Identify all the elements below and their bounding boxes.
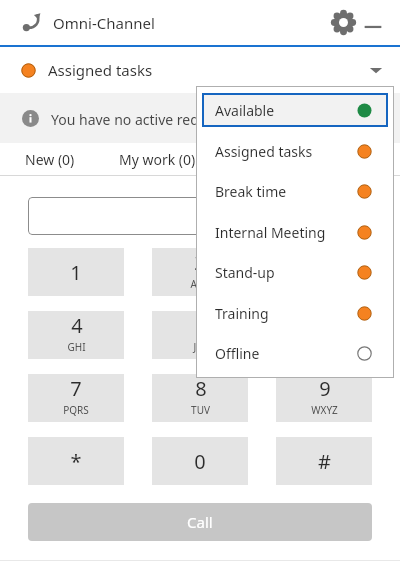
- staticText: 9: [319, 375, 331, 402]
- button[interactable]: [28, 197, 372, 235]
- button[interactable]: Stand-up: [196, 255, 394, 289]
- staticText: 1: [70, 259, 82, 286]
- staticText: Omni-Channel: [53, 13, 155, 33]
- staticText: PQRS: [63, 403, 89, 417]
- button[interactable]: *: [28, 437, 124, 485]
- button[interactable]: #: [276, 437, 372, 485]
- staticText: My work (0): [119, 150, 196, 169]
- staticText: Training: [215, 304, 269, 323]
- button[interactable]: 1: [28, 248, 124, 296]
- staticText: Call: [187, 512, 213, 532]
- staticText: New (0): [25, 150, 75, 169]
- button[interactable]: New (0): [0, 143, 100, 176]
- button[interactable]: Settings: [331, 10, 356, 35]
- staticText: #: [318, 448, 331, 475]
- button[interactable]: My work (0): [100, 143, 215, 176]
- button[interactable]: 4: [28, 311, 124, 359]
- button[interactable]: Omni-Channel: [18, 8, 46, 36]
- button[interactable]: 0: [152, 437, 248, 485]
- button[interactable]: 5: [152, 311, 248, 359]
- staticText: GHI: [67, 340, 86, 354]
- button[interactable]: Call: [28, 503, 372, 541]
- button[interactable]: Internal Meeting: [196, 215, 394, 249]
- staticText: Offline: [215, 344, 260, 363]
- staticText: *: [70, 448, 82, 475]
- button[interactable]: 9: [276, 374, 372, 422]
- button[interactable]: 8: [152, 374, 248, 422]
- staticText: WXYZ: [311, 403, 338, 417]
- staticText: Assigned tasks: [48, 60, 153, 80]
- staticText: 4: [71, 312, 83, 339]
- staticText: TUV: [191, 403, 210, 417]
- staticText: You have no active requests: [51, 110, 234, 129]
- staticText: ABC: [190, 277, 210, 291]
- staticText: Stand-up: [215, 263, 275, 282]
- button[interactable]: Training: [196, 296, 394, 330]
- staticText: 7: [70, 375, 82, 402]
- button[interactable]: Minimize: [362, 12, 384, 34]
- button[interactable]: Assigned tasks: [196, 134, 394, 168]
- button[interactable]: 2: [152, 248, 248, 296]
- button[interactable]: Break time: [196, 174, 394, 208]
- staticText: 2: [194, 249, 206, 276]
- staticText: 0: [194, 448, 206, 475]
- button[interactable]: 3: [276, 248, 372, 296]
- staticText: 8: [195, 375, 207, 402]
- button[interactable]: Available: [202, 93, 388, 127]
- button[interactable]: Offline: [196, 336, 394, 370]
- button[interactable]: Assigned tasks: [0, 47, 400, 93]
- staticText: Break time: [215, 182, 287, 201]
- staticText: Available: [215, 101, 275, 120]
- button[interactable]: 7: [28, 374, 124, 422]
- staticText: 5: [195, 312, 207, 339]
- staticText: Internal Meeting: [215, 223, 326, 242]
- staticText: Assigned tasks: [215, 142, 313, 161]
- staticText: JKL: [193, 340, 208, 354]
- button[interactable]: 6: [276, 311, 372, 359]
